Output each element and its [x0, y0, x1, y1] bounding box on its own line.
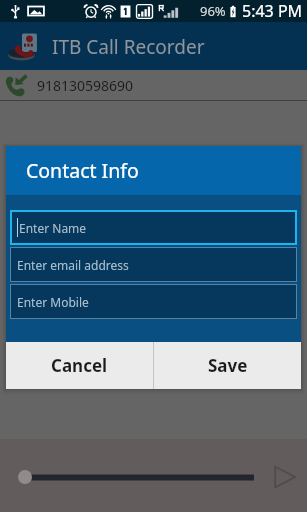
- staticText: Contact Info: [26, 157, 139, 184]
- button[interactable]: Enter Mobile: [10, 284, 297, 319]
- staticText: Enter Mobile: [17, 294, 89, 310]
- button[interactable]: Play: [271, 464, 297, 490]
- button[interactable]: Save: [154, 342, 301, 389]
- staticText: Enter Name: [19, 220, 87, 236]
- button[interactable]: Enter Name: [10, 210, 297, 245]
- button[interactable]: Cancel: [6, 342, 153, 389]
- staticText: Cancel: [51, 354, 108, 377]
- staticText: 918130598690: [37, 76, 134, 95]
- staticText: ITB Call Recorder: [52, 34, 205, 60]
- button[interactable]: 918130598690: [0, 70, 307, 101]
- button[interactable]: Enter email address: [10, 247, 297, 282]
- staticText: Save: [208, 354, 248, 377]
- staticText: 96%: [200, 2, 226, 20]
- staticText: Enter email address: [17, 257, 129, 273]
- staticText: 5:43 PM: [242, 0, 303, 22]
